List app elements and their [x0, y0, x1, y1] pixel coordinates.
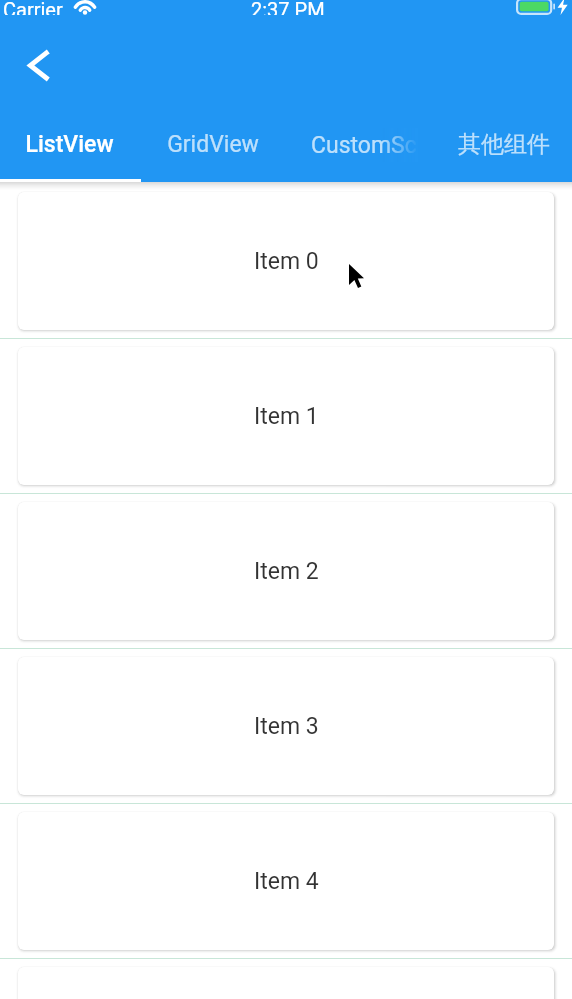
staticText: Item 4: [254, 868, 319, 895]
staticText: GridView: [167, 131, 259, 158]
staticText: Item 3: [254, 713, 319, 740]
button[interactable]: ListView: [0, 116, 139, 173]
button[interactable]: GridView: [139, 116, 287, 173]
staticText: 其他组件: [458, 130, 550, 159]
button[interactable]: Item 0: [0, 184, 572, 338]
button[interactable]: Item 2: [0, 494, 572, 648]
button[interactable]: Back: [12, 38, 66, 92]
staticText: ListView: [25, 131, 114, 158]
staticText: Item 1: [254, 403, 319, 430]
button[interactable]: Item 3: [0, 649, 572, 803]
staticText: Item 2: [254, 558, 319, 585]
button[interactable]: 其他组件: [433, 116, 572, 173]
staticText: Carrier: [3, 0, 63, 15]
staticText: Item 0: [254, 248, 319, 275]
staticText: 2:37 PM: [251, 0, 325, 15]
button[interactable]: Item 1: [0, 339, 572, 493]
button[interactable]: CustomScrollView: [287, 116, 430, 173]
staticText: CustomScrollView: [311, 132, 418, 159]
button[interactable]: Item 4: [0, 804, 572, 958]
